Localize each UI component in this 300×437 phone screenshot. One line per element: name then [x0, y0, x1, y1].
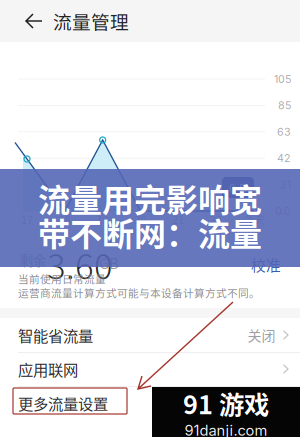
staticText: 智能省流量	[18, 324, 93, 346]
staticText: 91 游戏	[183, 385, 269, 421]
staticText: 22	[210, 211, 222, 227]
staticText: 运营商流量计算方式可能与本设备计算方式不同。	[18, 285, 260, 300]
staticText: 3.60	[47, 239, 113, 289]
staticText: 21	[172, 211, 184, 227]
button[interactable]: 智能省流量	[0, 318, 300, 352]
staticText: 关闭	[247, 325, 275, 345]
staticText: 带不断网：流量	[38, 209, 262, 255]
staticText: 剩余	[20, 250, 46, 269]
staticText: 63	[277, 125, 291, 138]
button[interactable]: 应用联网	[0, 352, 300, 386]
button[interactable]: 更多流量设置	[0, 386, 300, 420]
button[interactable]: 校准	[245, 251, 287, 278]
staticText: 91danji.com	[184, 421, 267, 437]
staticText: 应用联网	[18, 358, 78, 380]
staticText: 流量用完影响宽	[38, 175, 262, 221]
staticText: 流量管理	[53, 7, 129, 34]
staticText: 20	[134, 211, 146, 227]
staticText: 19	[97, 211, 109, 227]
staticText: 今天	[243, 211, 265, 227]
staticText: 0 B	[229, 179, 247, 196]
button[interactable]: Back	[15, 6, 53, 36]
staticText: 42	[277, 152, 291, 165]
staticText: GB	[99, 252, 119, 273]
staticText: 当前使用日常流量	[18, 271, 106, 286]
staticText: 校准	[251, 254, 281, 275]
staticText: 85	[278, 99, 291, 112]
staticText: 更多流量设置	[18, 392, 108, 414]
staticText: 105	[274, 72, 291, 85]
staticText: 18	[59, 211, 71, 227]
